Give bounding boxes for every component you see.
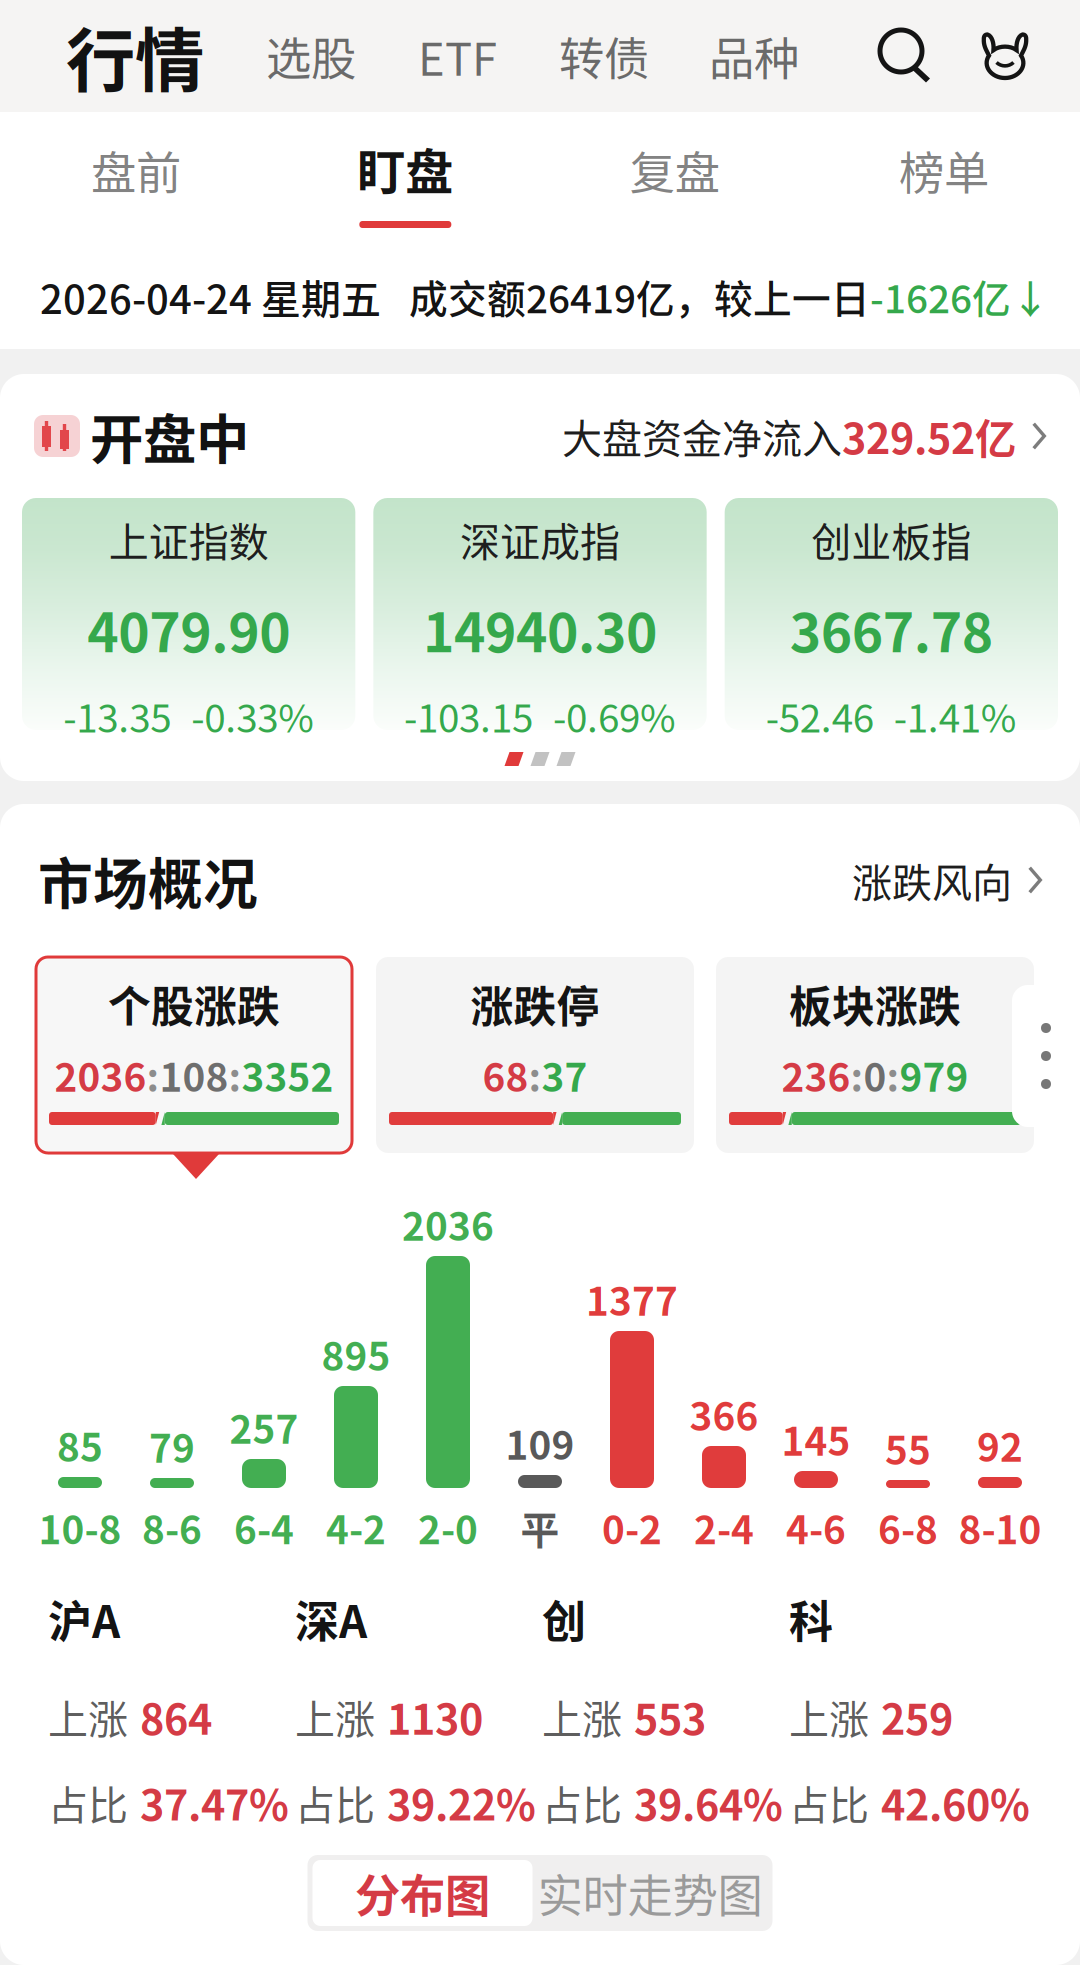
- staticText: 榜单: [899, 137, 989, 203]
- staticText: 6-4: [234, 1499, 294, 1555]
- staticText: 上涨: [48, 1688, 128, 1746]
- staticText: 4-6: [786, 1499, 846, 1555]
- staticText: -103.15: [404, 688, 533, 744]
- staticText: 涨跌风向: [852, 851, 1012, 909]
- staticText: 占比: [295, 1773, 375, 1831]
- staticText: :: [228, 1047, 241, 1103]
- button[interactable]: 搜索: [876, 27, 934, 85]
- staticText: 2036: [54, 1047, 146, 1103]
- staticText: 选股: [266, 23, 356, 89]
- staticText: 1130: [387, 1687, 483, 1747]
- staticText: 37: [541, 1047, 587, 1103]
- button[interactable]: 涨跌风向: [852, 851, 1042, 909]
- button[interactable]: 大盘资金净流入: [562, 406, 1046, 466]
- button[interactable]: 板块涨跌: [716, 957, 1034, 1153]
- staticText: 864: [140, 1687, 212, 1747]
- staticText: -1.41%: [894, 688, 1017, 744]
- staticText: 创业板指: [811, 510, 971, 568]
- staticText: 8-6: [142, 1499, 202, 1555]
- staticText: 68: [482, 1047, 528, 1103]
- staticText: 盘前: [91, 137, 181, 203]
- staticText: -52.46: [766, 688, 874, 744]
- staticText: 市场概况: [38, 840, 258, 920]
- staticText: 板块涨跌: [789, 973, 961, 1035]
- button[interactable]: 盯盘: [305, 112, 505, 244]
- staticText: 占比: [48, 1773, 128, 1831]
- staticText: 37.47%: [140, 1773, 289, 1832]
- button[interactable]: 用户中心: [978, 29, 1032, 83]
- staticText: :: [146, 1047, 159, 1103]
- button[interactable]: 创业板指: [725, 498, 1058, 730]
- button[interactable]: ETF: [418, 23, 497, 89]
- staticText: 8-10: [958, 1499, 1041, 1555]
- staticText: 553: [634, 1687, 706, 1747]
- staticText: 实时走势图: [537, 1860, 762, 1926]
- staticText: ETF: [418, 23, 497, 89]
- button[interactable]: 上证指数: [22, 498, 355, 730]
- staticText: 上涨: [789, 1688, 869, 1746]
- staticText: 4079.90: [87, 590, 290, 668]
- staticText: 39.64%: [634, 1773, 783, 1832]
- button[interactable]: 实时走势图: [532, 1860, 767, 1926]
- button[interactable]: 更多: [1012, 985, 1080, 1127]
- staticText: 366: [689, 1386, 758, 1442]
- staticText: 3352: [241, 1047, 333, 1103]
- staticText: 行情: [66, 6, 204, 106]
- staticText: 大盘资金净流入: [562, 407, 842, 465]
- staticText: 深A: [295, 1587, 367, 1651]
- staticText: 平: [520, 1499, 559, 1555]
- staticText: 6-8: [878, 1499, 938, 1555]
- staticText: 0: [863, 1047, 886, 1103]
- staticText: 42.60%: [881, 1773, 1030, 1832]
- staticText: 39.22%: [387, 1773, 536, 1832]
- button[interactable]: 涨跌停: [376, 957, 694, 1153]
- staticText: 2-0: [418, 1499, 478, 1555]
- staticText: 分布图: [355, 1860, 490, 1926]
- staticText: 0-2: [602, 1499, 662, 1555]
- button[interactable]: 榜单: [844, 112, 1044, 244]
- staticText: 145: [781, 1411, 850, 1467]
- staticText: -13.35: [63, 688, 171, 744]
- staticText: 92: [977, 1417, 1023, 1473]
- staticText: 复盘: [630, 137, 720, 203]
- staticText: 盯盘: [357, 133, 453, 203]
- staticText: 895: [321, 1326, 390, 1382]
- staticText: 2026-04-24 星期五: [40, 267, 381, 325]
- staticText: 品种: [709, 23, 799, 89]
- staticText: 109: [505, 1415, 574, 1471]
- staticText: 2-4: [694, 1499, 754, 1555]
- staticText: 108: [159, 1047, 228, 1103]
- button[interactable]: 复盘: [575, 112, 775, 244]
- staticText: 1377: [586, 1271, 678, 1327]
- button[interactable]: 选股: [266, 23, 356, 89]
- staticText: 10-8: [38, 1499, 121, 1555]
- button[interactable]: 分布图: [312, 1860, 532, 1926]
- staticText: 329.52亿: [842, 406, 1016, 466]
- staticText: 3667.78: [790, 590, 993, 668]
- staticText: 上涨: [295, 1688, 375, 1746]
- staticText: 上涨: [542, 1688, 622, 1746]
- staticText: 深证成指: [460, 510, 620, 568]
- staticText: 14940.30: [423, 590, 657, 668]
- button[interactable]: 盘前: [36, 112, 236, 244]
- button[interactable]: 个股涨跌: [36, 957, 352, 1153]
- button[interactable]: 品种: [709, 23, 799, 89]
- staticText: :: [528, 1047, 541, 1103]
- button[interactable]: 转债: [559, 23, 649, 89]
- staticText: 上证指数: [109, 510, 269, 568]
- staticText: -0.69%: [553, 688, 676, 744]
- staticText: 涨跌停: [470, 973, 599, 1035]
- staticText: 979: [899, 1047, 968, 1103]
- button[interactable]: 行情: [0, 6, 204, 106]
- staticText: 沪A: [48, 1587, 120, 1651]
- staticText: -1626亿↓: [870, 268, 1050, 324]
- staticText: 占比: [542, 1773, 622, 1831]
- staticText: :: [850, 1047, 863, 1103]
- staticText: 开盘中: [90, 397, 249, 475]
- staticText: 创: [542, 1587, 586, 1651]
- staticText: 79: [149, 1418, 195, 1474]
- staticText: :: [886, 1047, 899, 1103]
- button[interactable]: 深证成指: [373, 498, 707, 730]
- staticText: 55: [885, 1420, 931, 1476]
- staticText: 转债: [559, 23, 649, 89]
